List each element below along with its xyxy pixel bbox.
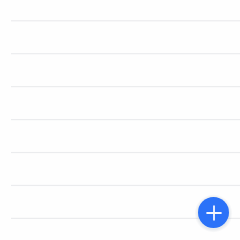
button[interactable] <box>0 86 240 119</box>
button[interactable] <box>0 152 240 185</box>
button[interactable] <box>0 218 240 240</box>
button[interactable]: Add <box>198 197 229 228</box>
button[interactable] <box>0 119 240 152</box>
button[interactable] <box>0 185 240 218</box>
